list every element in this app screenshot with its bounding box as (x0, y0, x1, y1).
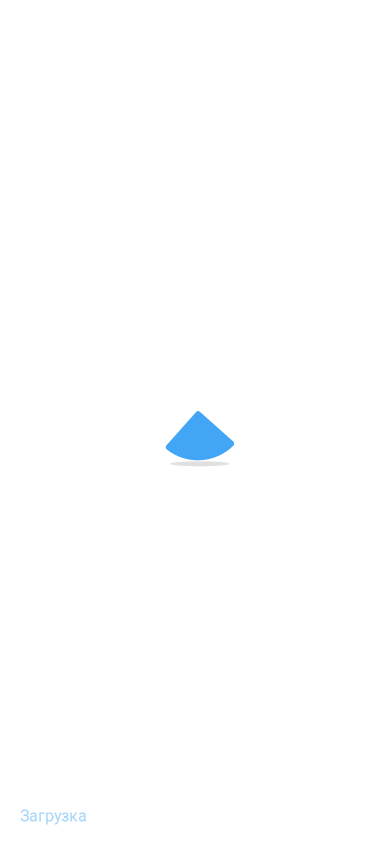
staticText: Загрузка (20, 807, 87, 825)
